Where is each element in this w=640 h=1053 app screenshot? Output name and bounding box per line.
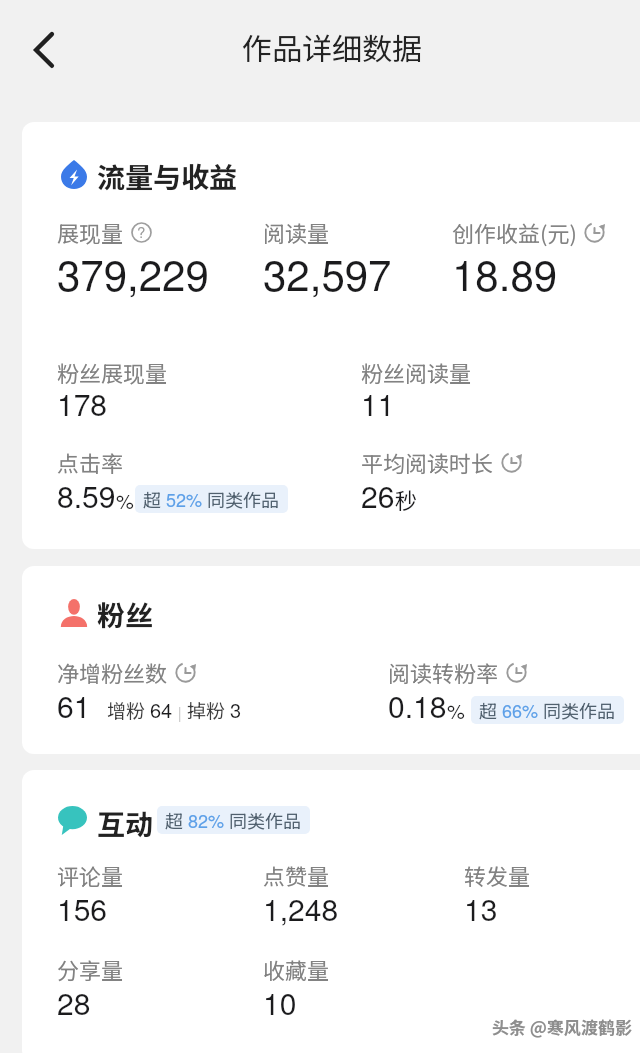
button[interactable]: 创作收益(元) <box>452 216 605 248</box>
staticText: 82% <box>188 807 225 833</box>
staticText: 评论量 <box>57 859 124 891</box>
button[interactable]: 净增粉丝数 updated hourly <box>175 662 196 683</box>
button[interactable]: 超 <box>135 485 288 513</box>
staticText: 同类作品 <box>539 697 616 723</box>
staticText: 阅读转粉率 <box>388 656 499 688</box>
staticText: 分享量 <box>57 953 124 985</box>
staticText: 超 <box>143 486 166 512</box>
staticText: 66% <box>502 697 539 723</box>
button[interactable]: About 展现量 <box>131 222 152 243</box>
staticText: 同类作品 <box>225 807 302 833</box>
staticText: 52% <box>166 486 203 512</box>
button[interactable]: 转发量 <box>464 859 531 891</box>
staticText: 超 <box>165 807 188 833</box>
staticText: | <box>173 701 187 724</box>
staticText: 掉粉 <box>187 696 230 724</box>
staticText: 64 <box>150 695 173 724</box>
staticText: 互动 <box>97 803 154 844</box>
button[interactable]: 阅读量 <box>263 216 330 248</box>
staticText: 1,248 <box>263 887 339 930</box>
staticText: 粉丝展现量 <box>57 356 168 388</box>
button[interactable]: 平均阅读时长 updated hourly <box>501 452 522 473</box>
staticText: 粉丝 <box>97 594 154 635</box>
staticText: 收藏量 <box>263 953 330 985</box>
staticText: 26 <box>361 474 395 517</box>
button[interactable]: 粉丝展现量 <box>57 356 168 388</box>
staticText: 点赞量 <box>263 859 330 891</box>
staticText: 3 <box>230 695 242 724</box>
staticText: 阅读量 <box>263 216 330 248</box>
staticText: ? <box>137 221 146 242</box>
staticText: 10 <box>263 981 297 1024</box>
staticText: 秒 <box>395 483 418 515</box>
staticText: 流量与收益 <box>97 156 238 197</box>
staticText: 头条 @寒风渡鹤影 <box>492 1014 632 1039</box>
button[interactable]: 创作收益(元) updated hourly <box>584 222 605 243</box>
button[interactable]: 阅读转粉率 <box>388 656 527 688</box>
button[interactable]: 展现量 <box>57 216 152 248</box>
staticText: 11 <box>361 382 395 425</box>
staticText: 8.59 <box>57 474 116 517</box>
staticText: 平均阅读时长 <box>361 446 494 478</box>
staticText: 61 <box>57 684 91 727</box>
staticText: 增粉 <box>107 696 150 724</box>
button[interactable]: 粉丝阅读量 <box>361 356 472 388</box>
button[interactable]: 点击率 <box>57 446 124 478</box>
button[interactable]: Back <box>14 25 62 73</box>
staticText: 0.18 <box>388 684 447 727</box>
staticText: 同类作品 <box>203 486 280 512</box>
staticText: 13 <box>464 887 498 930</box>
staticText: % <box>447 696 465 725</box>
button[interactable]: 净增粉丝数 <box>57 656 196 688</box>
button[interactable]: 阅读转粉率 updated hourly <box>506 662 527 683</box>
button[interactable]: 平均阅读时长 <box>361 446 522 478</box>
staticText: 156 <box>57 887 108 930</box>
staticText: 超 <box>479 697 502 723</box>
staticText: 粉丝阅读量 <box>361 356 472 388</box>
staticText: 展现量 <box>57 216 124 248</box>
staticText: 点击率 <box>57 446 124 478</box>
button[interactable]: 收藏量 <box>263 953 330 985</box>
staticText: % <box>116 486 134 515</box>
staticText: 32,597 <box>263 243 392 303</box>
button[interactable]: 超 <box>471 696 624 724</box>
staticText: 转发量 <box>464 859 531 891</box>
staticText: 18.89 <box>452 243 558 303</box>
button[interactable]: 评论量 <box>57 859 124 891</box>
staticText: 178 <box>57 382 108 425</box>
button[interactable]: 超 <box>157 806 310 834</box>
staticText: 创作收益(元) <box>452 216 577 248</box>
staticText: 作品详细数据 <box>242 25 422 68</box>
staticText: 净增粉丝数 <box>57 656 168 688</box>
button[interactable]: 分享量 <box>57 953 124 985</box>
staticText: 28 <box>57 981 91 1024</box>
button[interactable]: 点赞量 <box>263 859 330 891</box>
staticText: 379,229 <box>57 243 209 303</box>
